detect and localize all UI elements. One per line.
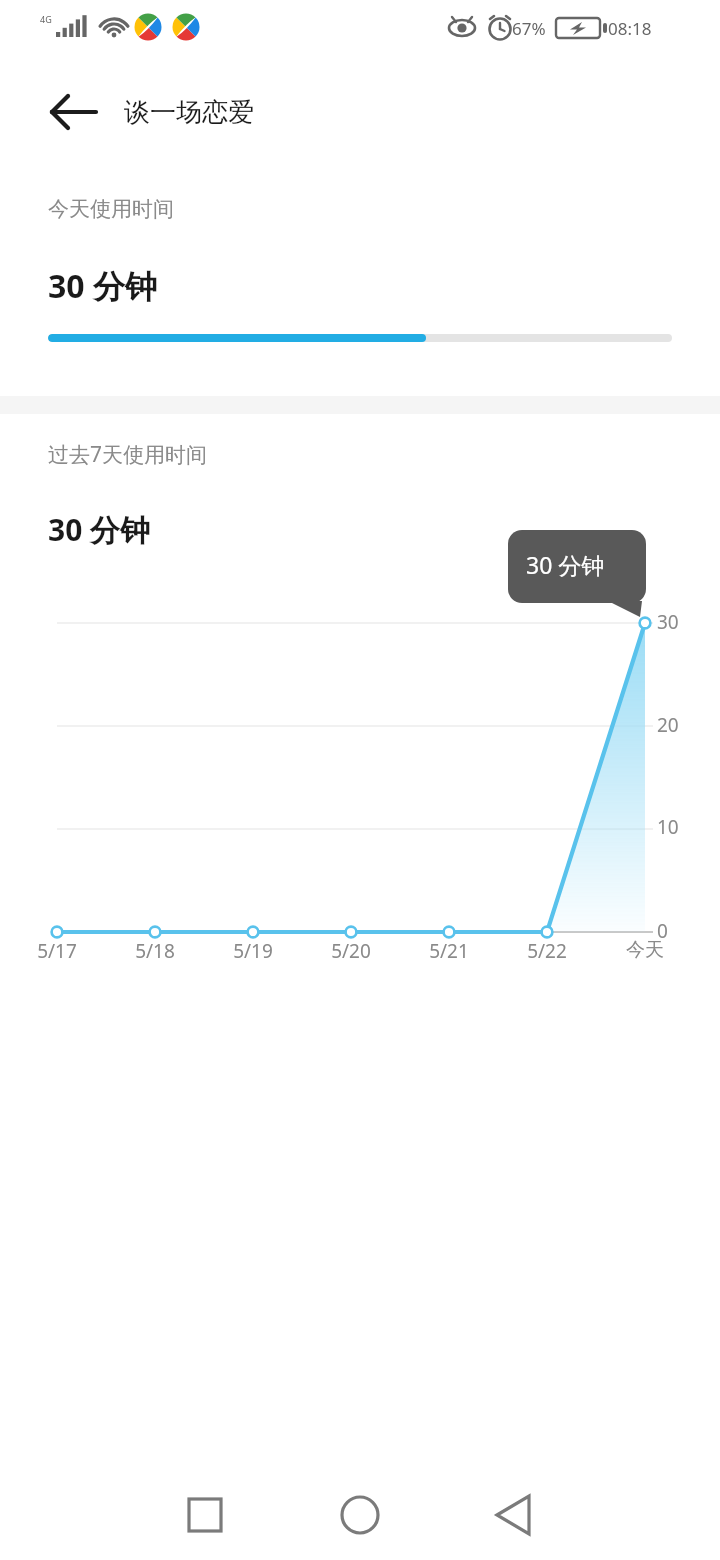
staticText: 30 — [657, 609, 679, 635]
staticText: 10 — [657, 814, 679, 840]
staticText: 今天 — [600, 938, 690, 962]
staticText: 0 — [657, 918, 668, 944]
staticText: 5/21 — [404, 938, 494, 964]
staticText: 5/18 — [110, 938, 200, 964]
staticText: 20 — [657, 712, 679, 738]
staticText: 5/17 — [12, 938, 102, 964]
staticText: 08:18 — [608, 17, 652, 40]
staticText: 5/19 — [208, 938, 298, 964]
staticText: 过去7天使用时间 — [48, 440, 208, 469]
button[interactable]: Home — [305, 1470, 415, 1560]
staticText: 5/22 — [502, 938, 592, 964]
staticText: 30 分钟 — [526, 549, 605, 580]
staticText: 今天使用时间 — [48, 196, 174, 222]
staticText: 30 分钟 — [48, 264, 157, 308]
button[interactable]: Back — [34, 72, 114, 152]
staticText: 30 分钟 — [48, 509, 151, 550]
staticText: 谈一场恋爱 — [124, 96, 254, 129]
staticText: 5/20 — [306, 938, 396, 964]
staticText: 67% — [512, 17, 546, 40]
button[interactable]: Recents — [150, 1470, 260, 1560]
button[interactable]: Back — [460, 1470, 570, 1560]
staticText: 4G — [40, 13, 52, 25]
